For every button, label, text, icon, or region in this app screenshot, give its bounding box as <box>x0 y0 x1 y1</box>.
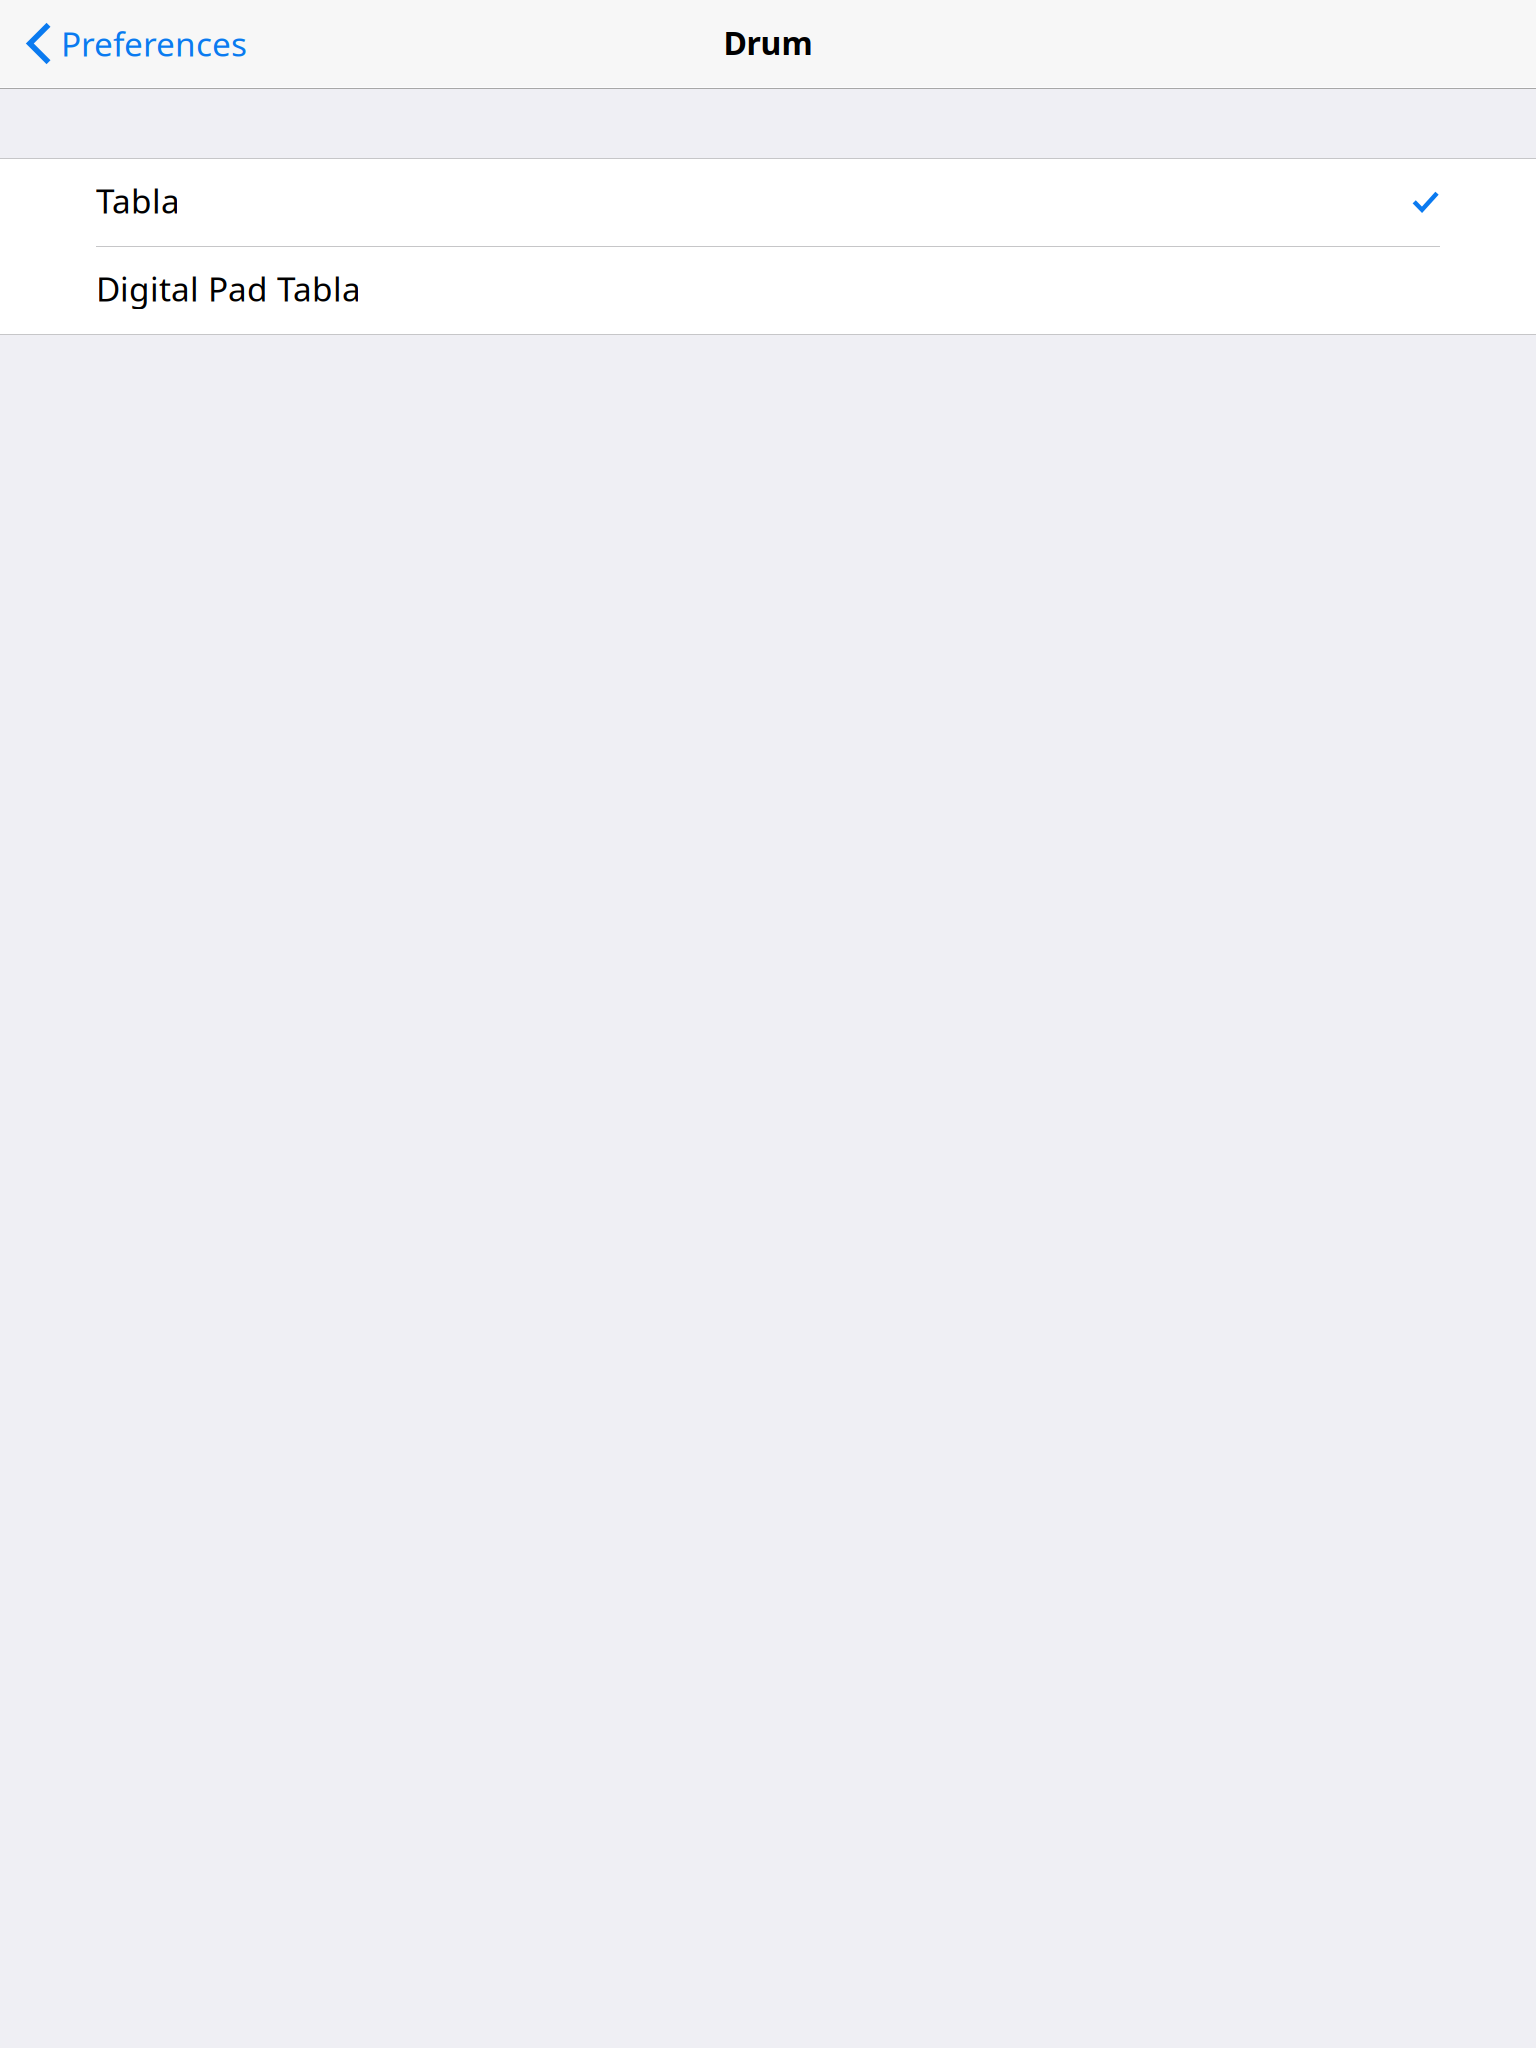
staticText: Drum <box>723 21 812 64</box>
button[interactable]: Tabla <box>0 159 1536 246</box>
staticText: Preferences <box>61 21 247 66</box>
staticText: Digital Pad Tabla <box>96 266 361 311</box>
button[interactable]: Preferences <box>0 0 261 87</box>
staticText: Tabla <box>96 178 180 223</box>
button[interactable]: Digital Pad Tabla <box>0 247 1536 334</box>
